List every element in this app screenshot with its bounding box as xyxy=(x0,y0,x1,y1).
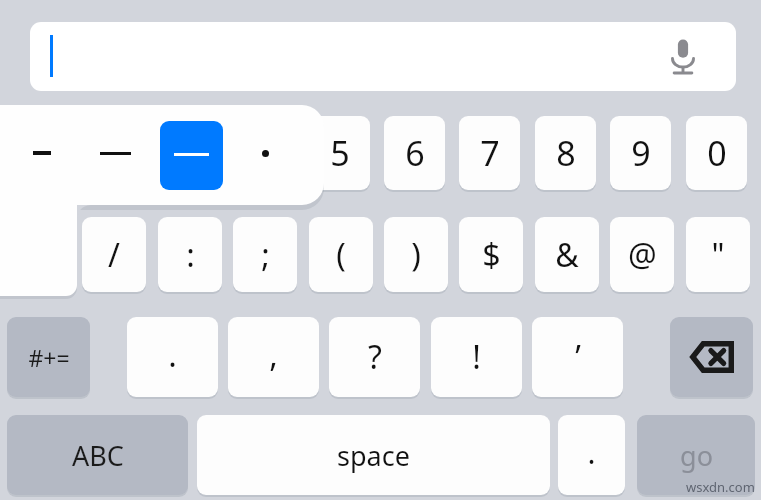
button[interactable]: go xyxy=(637,415,755,495)
staticText: / xyxy=(108,233,120,277)
staticText: ! xyxy=(472,335,481,379)
staticText: , xyxy=(269,333,278,377)
staticText: ; xyxy=(261,233,270,277)
staticText: space xyxy=(337,437,410,474)
button[interactable]: ABC xyxy=(7,415,188,495)
button[interactable]: Hyphen xyxy=(0,121,80,190)
staticText: 2 xyxy=(103,130,123,176)
staticText: " xyxy=(711,233,725,277)
staticText: 9 xyxy=(631,130,651,176)
button[interactable]: / xyxy=(82,217,146,292)
button[interactable]: ! xyxy=(431,317,522,397)
staticText: go xyxy=(680,437,713,474)
button[interactable]: #+= xyxy=(7,317,90,397)
button[interactable]: Em dash xyxy=(160,121,223,190)
button[interactable]: 0 xyxy=(686,116,747,190)
staticText: 7 xyxy=(480,130,500,176)
button[interactable]: 3 xyxy=(158,116,219,190)
staticText: & xyxy=(555,233,579,277)
button[interactable]: 5 xyxy=(309,116,370,190)
button[interactable]: ’ xyxy=(532,317,623,397)
staticText: 6 xyxy=(405,130,425,176)
button[interactable]: 4 xyxy=(233,116,294,190)
button[interactable]: . xyxy=(127,317,218,397)
button[interactable]: 1 xyxy=(7,116,68,190)
staticText: ’ xyxy=(575,335,581,379)
button[interactable]: " xyxy=(686,217,750,292)
staticText: 4 xyxy=(254,130,274,176)
button[interactable]: ( xyxy=(309,217,373,292)
staticText: 5 xyxy=(330,130,350,176)
button[interactable]: ? xyxy=(329,317,420,397)
button[interactable]: Dictate xyxy=(30,22,736,91)
button[interactable]: Dictate xyxy=(666,37,700,77)
staticText: ( xyxy=(336,233,346,277)
button[interactable]: , xyxy=(228,317,319,397)
button[interactable]: . xyxy=(558,415,625,495)
button[interactable]: Middle dot xyxy=(236,121,298,190)
staticText: : xyxy=(186,233,195,277)
button[interactable]: space xyxy=(197,415,550,495)
button[interactable]: 2 xyxy=(82,116,143,190)
button[interactable]: ) xyxy=(384,217,448,292)
button[interactable]: @ xyxy=(610,217,674,292)
button[interactable]: 9 xyxy=(610,116,671,190)
button[interactable]: 6 xyxy=(384,116,445,190)
staticText: 1 xyxy=(28,130,48,176)
button[interactable]: 8 xyxy=(535,116,596,190)
staticText: ) xyxy=(411,233,421,277)
button[interactable]: $ xyxy=(459,217,523,292)
staticText: 0 xyxy=(707,130,727,176)
button[interactable]: & xyxy=(535,217,599,292)
staticText: . xyxy=(587,432,596,473)
staticText: wsxdn.com xyxy=(686,478,755,496)
staticText: $ xyxy=(482,233,501,277)
staticText: ? xyxy=(368,335,382,379)
staticText: . xyxy=(168,333,177,377)
button[interactable]: ; xyxy=(233,217,297,292)
button[interactable]: Backspace xyxy=(670,317,753,397)
staticText: ABC xyxy=(72,437,124,474)
button[interactable]: 7 xyxy=(459,116,520,190)
staticText: 8 xyxy=(556,130,576,176)
button[interactable]: : xyxy=(158,217,222,292)
staticText: @ xyxy=(628,233,657,277)
button[interactable]: En dash xyxy=(86,121,148,190)
staticText: 3 xyxy=(179,130,199,176)
staticText: #+= xyxy=(28,342,70,373)
